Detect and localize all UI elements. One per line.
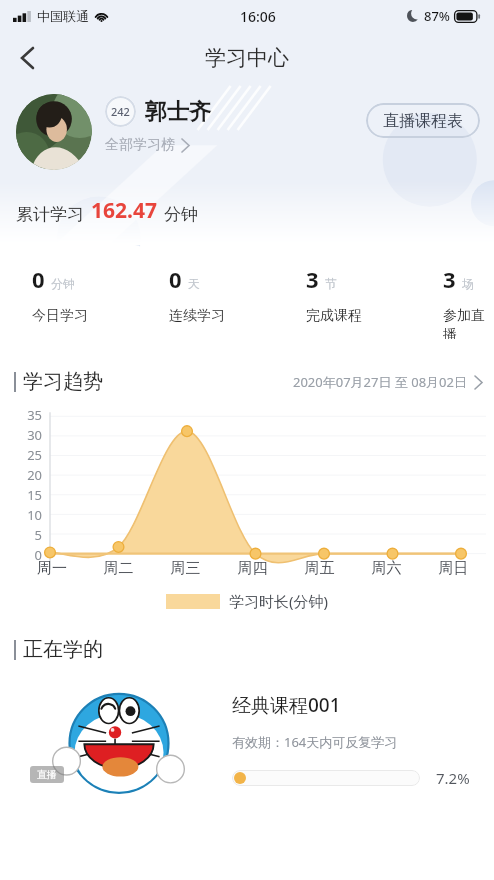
staticText: 5 — [34, 526, 42, 544]
button[interactable]: Back — [4, 35, 50, 81]
staticText: 16:06 — [240, 7, 276, 26]
staticText: 0 — [32, 264, 45, 294]
staticText: 10 — [27, 506, 42, 524]
staticText: 经典课程001 — [232, 692, 341, 718]
staticText: 直播 — [37, 768, 57, 781]
staticText: 参加直播 — [443, 307, 494, 339]
staticText: 周五 — [286, 559, 353, 578]
staticText: 场 — [462, 276, 474, 291]
staticText: 0 — [34, 546, 42, 564]
staticText: 周日 — [420, 559, 487, 578]
button[interactable]: Profile avatar — [16, 94, 92, 170]
staticText: 周六 — [353, 559, 420, 578]
staticText: 周一 — [19, 559, 85, 578]
staticText: 中国联通 — [37, 8, 89, 24]
staticText: 25 — [27, 446, 42, 464]
button[interactable]: 直播 — [14, 674, 480, 806]
staticText: 20 — [27, 466, 42, 484]
staticText: 连续学习 — [169, 307, 225, 325]
staticText: 30 — [27, 426, 42, 444]
staticText: 学习中心 — [205, 45, 289, 71]
staticText: 天 — [188, 276, 200, 291]
staticText: 直播课程表 — [383, 111, 463, 131]
staticText: 完成课程 — [306, 307, 362, 325]
staticText: 节 — [325, 276, 337, 291]
staticText: 学习时长(分钟) — [229, 591, 329, 611]
staticText: 正在学的 — [23, 637, 103, 662]
button[interactable]: 全部学习榜 — [105, 136, 189, 154]
button[interactable]: 2020年07月27日 至 08月02日 — [293, 373, 482, 391]
staticText: 7.2% — [436, 768, 470, 788]
staticText: 今日学习 — [32, 307, 88, 325]
staticText: 87% — [424, 7, 450, 25]
staticText: 周三 — [152, 559, 219, 578]
staticText: 分钟 — [51, 276, 75, 291]
staticText: 35 — [27, 406, 42, 424]
button[interactable]: 3 — [429, 245, 494, 339]
staticText: 分钟 — [164, 204, 198, 225]
staticText: 3 — [306, 264, 319, 294]
button[interactable]: 直播课程表 — [366, 103, 480, 138]
staticText: 累计学习 — [16, 204, 84, 225]
staticText: 0 — [169, 264, 182, 294]
staticText: 3 — [443, 264, 456, 294]
staticText: 周二 — [85, 559, 152, 578]
staticText: 学习趋势 — [23, 369, 103, 394]
staticText: 2020年07月27日 至 08月02日 — [293, 373, 467, 391]
button[interactable]: 0 — [155, 245, 282, 339]
staticText: 郭士齐 — [145, 98, 211, 126]
staticText: 15 — [27, 486, 42, 504]
button[interactable]: 0 — [18, 245, 145, 339]
button[interactable]: 3 — [292, 245, 419, 339]
staticText: 周四 — [219, 559, 286, 578]
staticText: 242 — [111, 104, 130, 119]
staticText: 有效期：164天内可反复学习 — [232, 733, 398, 751]
staticText: 162.47 — [91, 196, 157, 225]
staticText: 全部学习榜 — [105, 136, 175, 154]
